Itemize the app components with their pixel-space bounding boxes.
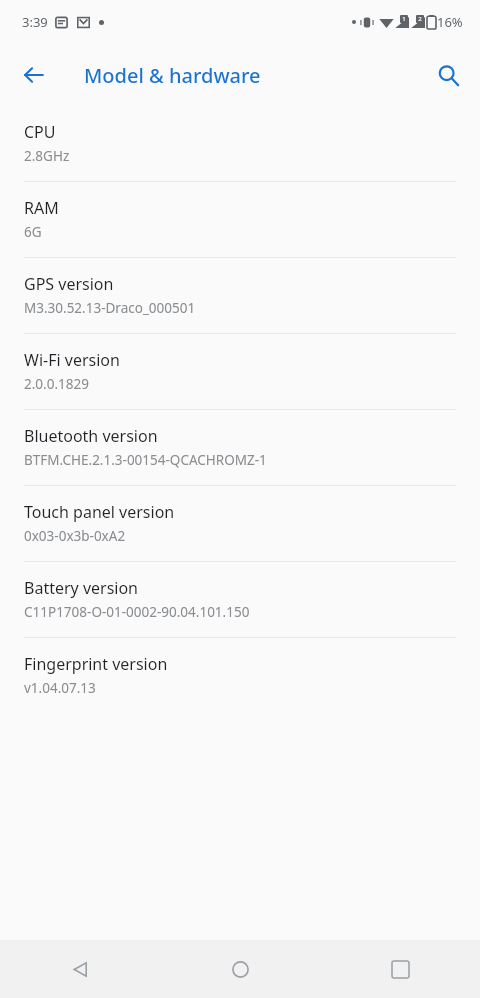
staticText: 3:39	[22, 13, 48, 31]
staticText: RAM	[24, 197, 59, 219]
staticText: 2.0.0.1829	[24, 375, 89, 393]
button[interactable]: Back	[0, 940, 160, 998]
staticText: Wi-Fi version	[24, 349, 120, 371]
button[interactable]: Bluetooth version	[0, 410, 480, 485]
staticText: 0x03-0x3b-0xA2	[24, 527, 126, 545]
staticText: Bluetooth version	[24, 425, 158, 447]
button[interactable]: RAM	[0, 182, 480, 257]
staticText: Battery version	[24, 577, 139, 599]
staticText: Model & hardware	[84, 62, 261, 89]
staticText: v1.04.07.13	[24, 679, 96, 697]
staticText: 6G	[24, 223, 42, 241]
button[interactable]: Back	[10, 51, 58, 99]
staticText: BTFM.CHE.2.1.3-00154-QCACHROMZ-1	[24, 451, 267, 469]
staticText: M3.30.52.13-Draco_000501	[24, 299, 196, 317]
staticText: 16%	[437, 13, 463, 31]
button[interactable]: Battery version	[0, 562, 480, 637]
button[interactable]: Recent apps	[320, 940, 480, 998]
staticText: 1	[402, 15, 406, 23]
staticText: CPU	[24, 121, 56, 143]
staticText: C11P1708-O-01-0002-90.04.101.150	[24, 603, 250, 621]
staticText: Fingerprint version	[24, 653, 168, 675]
staticText: 2	[418, 15, 422, 23]
button[interactable]: GPS version	[0, 258, 480, 333]
staticText: GPS version	[24, 273, 114, 295]
button[interactable]: Home	[160, 940, 320, 998]
button[interactable]: Touch panel version	[0, 486, 480, 561]
button[interactable]: CPU	[0, 106, 480, 181]
button[interactable]: Search	[424, 51, 472, 99]
button[interactable]: Wi-Fi version	[0, 334, 480, 409]
staticText: Touch panel version	[24, 501, 175, 523]
button[interactable]: Fingerprint version	[0, 638, 480, 713]
staticText: 2.8GHz	[24, 147, 70, 165]
